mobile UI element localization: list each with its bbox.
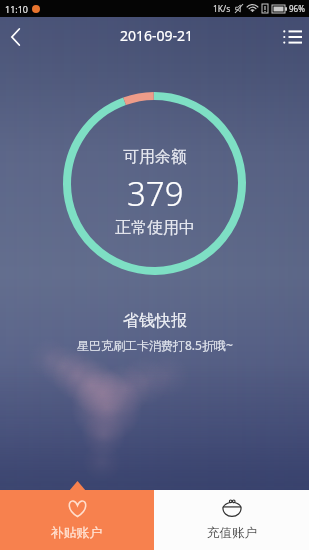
staticText: 充值账户 <box>207 525 257 541</box>
staticText: 11:10 <box>5 3 29 15</box>
staticText: 星巴克刷工卡消费打8.5折哦~ <box>77 337 233 353</box>
staticText: 96% <box>289 3 305 14</box>
button[interactable]: 补贴账户 <box>0 490 154 550</box>
staticText: 1K/s <box>213 3 231 15</box>
staticText: 省钱快报 <box>123 311 187 331</box>
button[interactable]: 充值账户 <box>154 490 309 550</box>
button[interactable]: Menu <box>271 17 309 56</box>
button[interactable]: Back <box>0 17 36 56</box>
staticText: 可用余额 <box>123 147 187 167</box>
staticText: 正常使用中 <box>115 218 195 238</box>
staticText: 补贴账户 <box>51 525 103 541</box>
staticText: 2016-09-21 <box>120 26 194 45</box>
staticText: 379 <box>127 171 184 216</box>
